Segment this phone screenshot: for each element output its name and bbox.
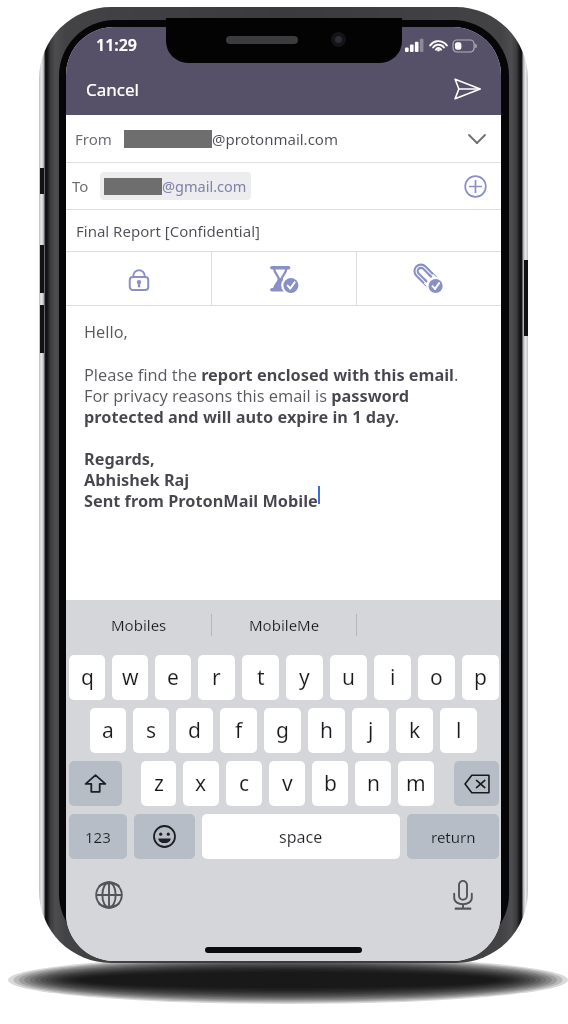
- staticText: Mobiles: [111, 615, 167, 635]
- button[interactable]: c: [226, 761, 262, 806]
- button[interactable]: z: [141, 761, 176, 806]
- staticText: v: [282, 769, 293, 798]
- staticText: x: [195, 769, 207, 798]
- button[interactable]: o: [418, 655, 455, 700]
- button[interactable]: Mobiles: [66, 600, 211, 649]
- button[interactable]: g: [264, 708, 301, 753]
- staticText: @gmail.com: [162, 176, 247, 196]
- button[interactable]: t: [242, 655, 279, 700]
- button[interactable]: u: [330, 655, 367, 700]
- staticText: z: [154, 769, 164, 798]
- staticText: MobileMe: [249, 615, 320, 635]
- button[interactable]: Expand recipients: [453, 125, 501, 153]
- button[interactable]: q: [69, 655, 105, 700]
- staticText: To: [72, 176, 89, 196]
- button[interactable]: space: [202, 814, 400, 859]
- staticText: d: [188, 716, 201, 745]
- button[interactable]: To: [66, 163, 501, 209]
- staticText: j: [368, 716, 374, 745]
- staticText: Hello, Please find the report enclosed w…: [84, 321, 459, 511]
- staticText: c: [239, 769, 250, 798]
- button[interactable]: x: [183, 761, 219, 806]
- button[interactable]: Cancel: [66, 69, 153, 110]
- button[interactable]: Expiration: [212, 252, 356, 305]
- button[interactable]: return: [407, 814, 499, 859]
- staticText: l: [456, 716, 462, 745]
- staticText: m: [406, 769, 426, 798]
- button[interactable]: Shift: [69, 761, 122, 806]
- staticText: r: [212, 663, 221, 692]
- button[interactable]: w: [112, 655, 148, 700]
- staticText: Final Report [Confidential]: [76, 221, 260, 241]
- button[interactable]: d: [176, 708, 213, 753]
- button[interactable]: Dictate: [447, 874, 479, 916]
- staticText: g: [276, 716, 289, 745]
- staticText: Cancel: [86, 78, 139, 101]
- button[interactable]: l: [440, 708, 477, 753]
- button[interactable]: s: [133, 708, 169, 753]
- button[interactable]: Emoji: [134, 814, 195, 859]
- staticText: return: [431, 827, 476, 847]
- staticText: q: [81, 663, 94, 692]
- staticText: h: [320, 716, 333, 745]
- button[interactable]: MobileMe: [212, 600, 356, 649]
- staticText: i: [390, 663, 396, 692]
- staticText: w: [122, 663, 139, 692]
- button[interactable]: r: [198, 655, 235, 700]
- button[interactable]: j: [352, 708, 389, 753]
- button[interactable]: Backspace: [454, 761, 499, 806]
- staticText: space: [279, 826, 323, 848]
- button[interactable]: Add contact: [450, 167, 501, 206]
- staticText: 123: [85, 827, 111, 847]
- button[interactable]: y: [286, 655, 323, 700]
- button[interactable]: e: [155, 655, 191, 700]
- button[interactable]: v: [269, 761, 305, 806]
- button[interactable]: n: [355, 761, 391, 806]
- button[interactable]: i: [374, 655, 411, 700]
- button[interactable]: a: [90, 708, 126, 753]
- button[interactable]: Encryption: [66, 252, 211, 305]
- button[interactable]: f: [220, 708, 257, 753]
- staticText: y: [299, 663, 310, 692]
- staticText: o: [430, 663, 443, 692]
- staticText: p: [474, 663, 487, 692]
- staticText: 11:29: [96, 34, 138, 56]
- button[interactable]: Send: [440, 70, 501, 108]
- staticText: s: [146, 716, 157, 745]
- button[interactable]: Final Report [Confidential]: [66, 210, 501, 251]
- button[interactable]: Attachments: [357, 252, 501, 305]
- button[interactable]: Change keyboard: [89, 875, 129, 915]
- button[interactable]: h: [308, 708, 345, 753]
- staticText: f: [235, 716, 243, 745]
- staticText: b: [324, 769, 337, 798]
- button[interactable]: p: [462, 655, 499, 700]
- staticText: n: [367, 769, 380, 798]
- button[interactable]: b: [312, 761, 348, 806]
- staticText: e: [167, 663, 179, 692]
- staticText: k: [409, 716, 421, 745]
- staticText: From: [75, 129, 112, 149]
- staticText: a: [102, 716, 114, 745]
- staticText: @protonmail.com: [212, 129, 338, 149]
- staticText: t: [257, 663, 265, 692]
- button[interactable]: m: [398, 761, 434, 806]
- button[interactable]: 123: [69, 814, 127, 859]
- button[interactable]: From: [66, 115, 501, 162]
- button[interactable]: k: [396, 708, 433, 753]
- staticText: u: [342, 663, 355, 692]
